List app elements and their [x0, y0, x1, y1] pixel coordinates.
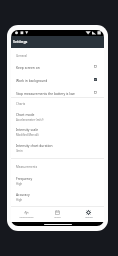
- button[interactable]: Measurements: [11, 208, 42, 221]
- staticText: Work in background: [16, 78, 94, 82]
- staticText: Measurements: [19, 216, 34, 219]
- button[interactable]: Stop measurements the battery is low: [11, 86, 104, 99]
- staticText: Accuracy: [16, 192, 30, 196]
- staticText: Chart mode: [16, 112, 35, 116]
- staticText: Keep screen on: [16, 65, 94, 69]
- staticText: High: [16, 182, 23, 186]
- staticText: Stop measurements the battery is low: [16, 91, 94, 95]
- staticText: General: [16, 54, 28, 58]
- button[interactable]: Keep screen on: [11, 60, 104, 73]
- staticText: Settings: [13, 39, 28, 44]
- staticText: Accelerometer (m/s²): [16, 118, 44, 122]
- staticText: High: [16, 198, 23, 202]
- button[interactable]: Chart mode: [11, 109, 104, 122]
- button[interactable]: History: [42, 208, 73, 221]
- button[interactable]: Accuracy: [11, 189, 104, 202]
- staticText: Intensity scale: [16, 127, 39, 131]
- staticText: Charts: [16, 102, 26, 106]
- staticText: History: [54, 216, 61, 219]
- button[interactable]: Settings: [73, 208, 104, 221]
- staticText: Frequency: [16, 176, 33, 180]
- staticText: Measurements: [16, 165, 38, 169]
- button[interactable]: Intensity scale: [11, 124, 104, 137]
- staticText: Intensity chart duration: [16, 143, 53, 147]
- staticText: Settings: [85, 216, 93, 219]
- button[interactable]: Frequency: [11, 173, 104, 186]
- button[interactable]: Intensity chart duration: [11, 140, 104, 153]
- staticText: Modified Mercalli: [16, 133, 39, 137]
- staticText: 3min: [16, 149, 23, 153]
- button[interactable]: Work in background: [11, 73, 104, 86]
